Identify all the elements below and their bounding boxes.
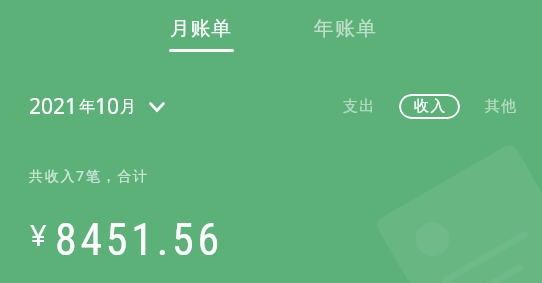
staticText: 月账单 bbox=[170, 16, 233, 41]
staticText: 支出 bbox=[342, 97, 375, 116]
staticText: 其他 bbox=[484, 97, 517, 116]
staticText: 10 bbox=[95, 92, 120, 121]
staticText: 2021 bbox=[29, 92, 78, 121]
other: Choose month bbox=[149, 102, 165, 112]
staticText: 年 bbox=[79, 97, 95, 117]
staticText: 8451.56 bbox=[55, 214, 223, 266]
button[interactable]: 支出 bbox=[336, 89, 381, 124]
staticText: 月 bbox=[120, 97, 136, 117]
button[interactable]: 收入 bbox=[399, 94, 460, 119]
button[interactable]: 月账单 bbox=[161, 12, 242, 56]
staticText: ¥ bbox=[30, 215, 47, 254]
button[interactable]: 其他 bbox=[478, 89, 523, 124]
staticText: 年账单 bbox=[314, 16, 378, 41]
staticText: 共收入7笔，合计 bbox=[29, 166, 149, 185]
button[interactable]: 年账单 bbox=[306, 12, 386, 45]
button[interactable]: 2021 bbox=[21, 86, 173, 127]
staticText: 收入 bbox=[413, 97, 446, 116]
